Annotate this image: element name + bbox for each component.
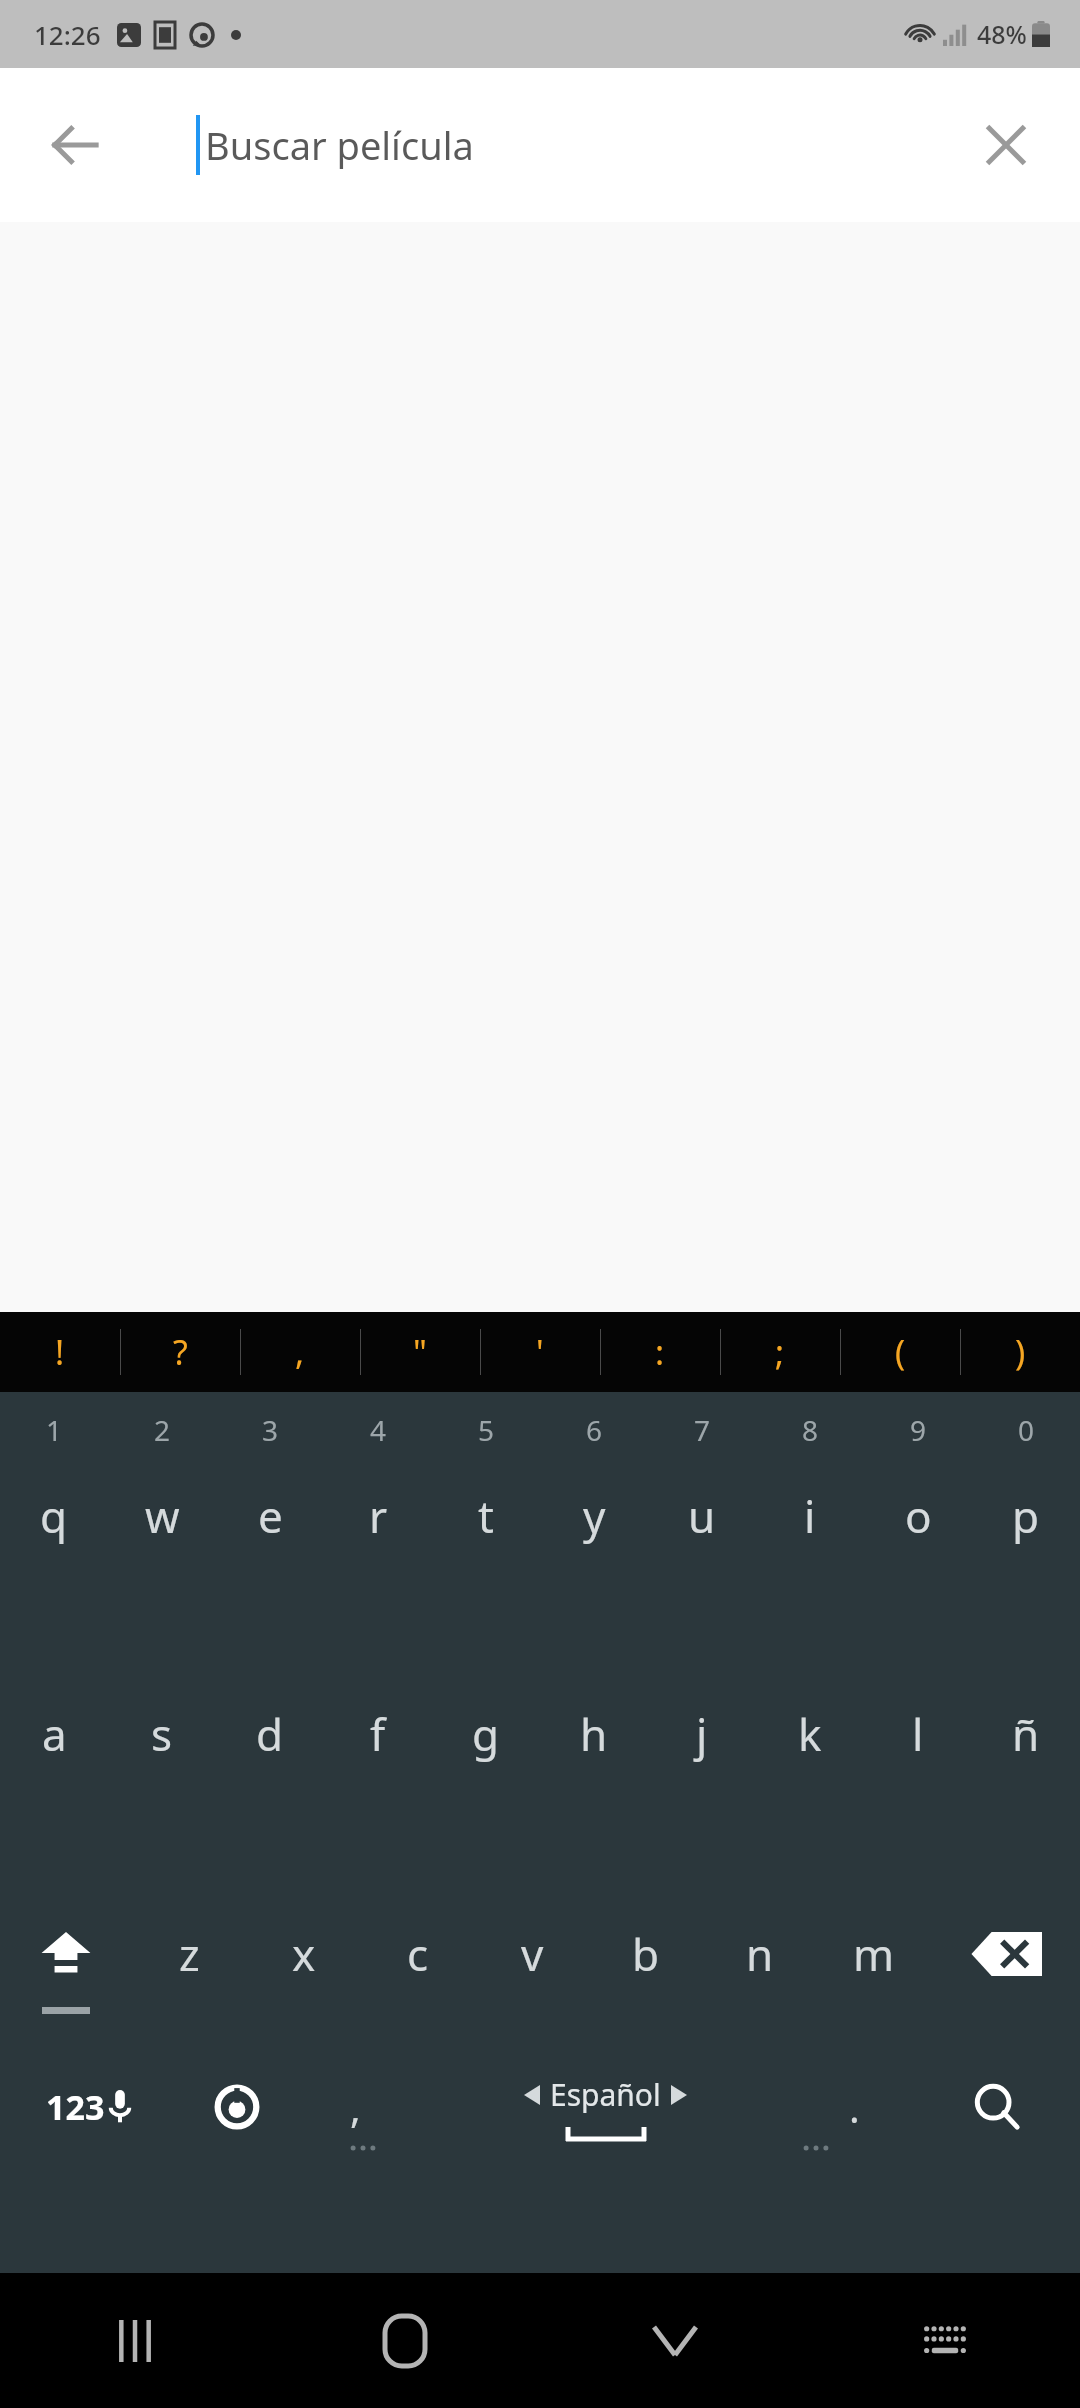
staticText: b: [632, 1924, 660, 1984]
button[interactable]: !: [0, 1312, 120, 1392]
button[interactable]: t: [432, 1482, 540, 1550]
staticText: ñ: [1012, 1704, 1040, 1764]
staticText: f: [370, 1704, 386, 1764]
staticText: ?: [173, 1329, 188, 1375]
staticText: 0: [1018, 1411, 1035, 1449]
button[interactable]: ?: [120, 1312, 240, 1392]
button[interactable]: b: [589, 1918, 703, 1990]
button[interactable]: 2: [108, 1408, 216, 1452]
button[interactable]: ": [360, 1312, 480, 1392]
staticText: s: [151, 1704, 173, 1764]
button[interactable]: 8: [756, 1408, 864, 1452]
button[interactable]: 1: [0, 1408, 108, 1452]
staticText: 5: [478, 1411, 495, 1449]
button[interactable]: m: [817, 1918, 931, 1990]
button[interactable]: j: [648, 1700, 756, 1768]
button[interactable]: l: [864, 1700, 972, 1768]
button[interactable]: 4: [324, 1408, 432, 1452]
staticText: 9: [910, 1411, 927, 1449]
staticText: g: [472, 1704, 500, 1764]
button[interactable]: 7: [648, 1408, 756, 1452]
button[interactable]: h: [540, 1700, 648, 1768]
staticText: n: [746, 1924, 774, 1984]
button[interactable]: Hide keyboard: [540, 2273, 810, 2408]
button[interactable]: k: [756, 1700, 864, 1768]
button[interactable]: s: [108, 1700, 216, 1768]
button[interactable]: g: [432, 1700, 540, 1768]
button[interactable]: n: [703, 1918, 817, 1990]
button[interactable]: Symbols and voice input: [0, 2070, 177, 2144]
button[interactable]: z: [132, 1918, 247, 1990]
button[interactable]: Space: [415, 2070, 795, 2144]
button[interactable]: Recents: [0, 2273, 270, 2408]
button[interactable]: r: [324, 1482, 432, 1550]
button[interactable]: a: [0, 1700, 108, 1768]
button[interactable]: Keyboard settings: [177, 2070, 296, 2144]
button[interactable]: e: [216, 1482, 324, 1550]
button[interactable]: ,: [296, 2070, 415, 2144]
button[interactable]: ,: [240, 1312, 360, 1392]
staticText: 1: [46, 1411, 63, 1449]
button[interactable]: ': [480, 1312, 600, 1392]
button[interactable]: q: [0, 1482, 108, 1550]
button[interactable]: d: [216, 1700, 324, 1768]
staticText: c: [407, 1924, 429, 1984]
button[interactable]: 9: [864, 1408, 972, 1452]
staticText: r: [369, 1486, 388, 1546]
staticText: 2: [154, 1411, 171, 1449]
staticText: o: [905, 1486, 932, 1546]
button[interactable]: ;: [720, 1312, 840, 1392]
button[interactable]: v: [475, 1918, 589, 1990]
button[interactable]: x: [247, 1918, 361, 1990]
staticText: 7: [694, 1411, 711, 1449]
staticText: z: [179, 1924, 200, 1984]
button[interactable]: p: [972, 1482, 1080, 1550]
button[interactable]: 3: [216, 1408, 324, 1452]
button[interactable]: 0: [972, 1408, 1080, 1452]
staticText: m: [853, 1924, 895, 1984]
button[interactable]: Clear: [960, 99, 1052, 191]
button[interactable]: w: [108, 1482, 216, 1550]
staticText: y: [583, 1486, 606, 1546]
staticText: p: [1012, 1486, 1040, 1546]
staticText: 12:26: [34, 17, 101, 52]
staticText: (: [895, 1329, 906, 1375]
button[interactable]: (: [840, 1312, 960, 1392]
staticText: ,: [350, 2080, 361, 2134]
button[interactable]: i: [756, 1482, 864, 1550]
staticText: 8: [802, 1411, 819, 1449]
staticText: v: [521, 1924, 544, 1984]
button[interactable]: :: [600, 1312, 720, 1392]
staticText: 3: [262, 1411, 279, 1449]
staticText: e: [258, 1486, 283, 1546]
button[interactable]: Search: [914, 2070, 1080, 2144]
button[interactable]: u: [648, 1482, 756, 1550]
button[interactable]: ): [960, 1312, 1080, 1392]
staticText: ': [536, 1329, 544, 1375]
staticText: ): [1015, 1329, 1026, 1375]
staticText: x: [292, 1924, 316, 1984]
button[interactable]: f: [324, 1700, 432, 1768]
staticText: 123: [46, 2084, 105, 2130]
staticText: u: [688, 1486, 716, 1546]
button[interactable]: y: [540, 1482, 648, 1550]
staticText: ": [413, 1329, 427, 1375]
staticText: Español: [550, 2074, 661, 2115]
button[interactable]: 6: [540, 1408, 648, 1452]
button[interactable]: Home: [270, 2273, 540, 2408]
button[interactable]: .: [795, 2070, 914, 2144]
button[interactable]: ñ: [972, 1700, 1080, 1768]
button[interactable]: c: [361, 1918, 475, 1990]
button[interactable]: Shift: [0, 1918, 132, 1990]
staticText: j: [696, 1704, 708, 1764]
staticText: a: [42, 1704, 67, 1764]
staticText: d: [256, 1704, 284, 1764]
button[interactable]: Back: [30, 100, 120, 190]
staticText: 6: [586, 1411, 603, 1449]
button[interactable]: Backspace: [931, 1918, 1080, 1990]
staticText: 48%: [977, 17, 1027, 51]
button[interactable]: o: [864, 1482, 972, 1550]
button[interactable]: Change keyboard: [810, 2273, 1080, 2408]
button[interactable]: 5: [432, 1408, 540, 1452]
staticText: k: [798, 1704, 822, 1764]
